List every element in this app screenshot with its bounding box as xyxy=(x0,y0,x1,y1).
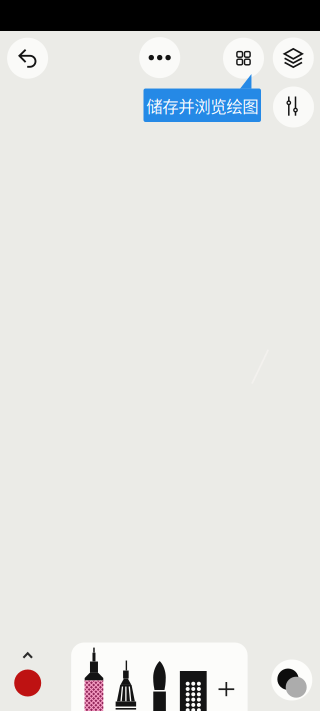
button[interactable]: Colour picker xyxy=(271,659,312,700)
button[interactable]: Undo xyxy=(7,38,48,79)
button[interactable]: Gallery xyxy=(223,38,264,79)
button[interactable]: Adjustments xyxy=(273,86,314,127)
button[interactable]: Current colour xyxy=(9,648,47,700)
button[interactable]: Layers xyxy=(273,37,314,78)
staticText: 储存并浏览绘图 xyxy=(146,93,258,117)
button[interactable]: Add brush xyxy=(209,672,244,706)
button[interactable]: More options xyxy=(139,37,180,78)
